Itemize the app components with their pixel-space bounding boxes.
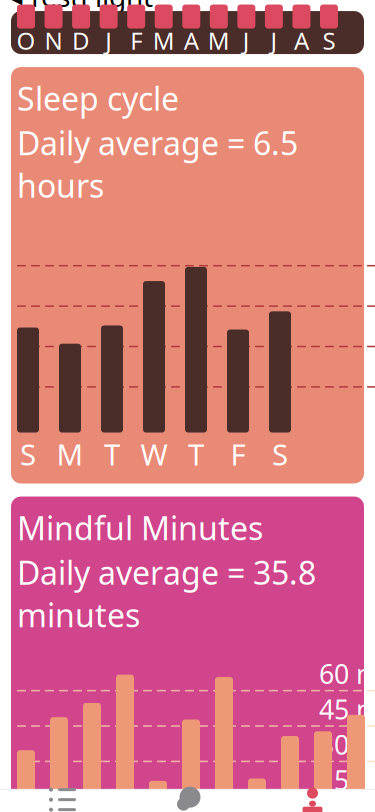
staticText: Daily average = 6.5 hours: [17, 122, 298, 207]
staticText: S: [20, 434, 36, 473]
staticText: M: [153, 25, 175, 56]
staticText: S: [272, 434, 288, 473]
staticText: F: [230, 434, 245, 473]
staticText: ◀: [7, 0, 22, 7]
staticText: Daily average = 35.8 minutes: [17, 551, 316, 636]
staticText: TestFlight: [27, 0, 153, 15]
staticText: Mindful Minutes: [17, 506, 263, 549]
staticText: S: [322, 25, 335, 56]
staticText: J: [270, 25, 277, 56]
staticText: 15 min: [319, 762, 375, 798]
staticText: A: [294, 25, 309, 56]
staticText: J: [105, 25, 112, 56]
staticText: Sleep cycle: [17, 77, 179, 120]
staticText: 30 min: [319, 727, 375, 762]
staticText: 45 min: [319, 691, 375, 727]
button[interactable]: Overview: [250, 780, 375, 812]
staticText: W: [140, 434, 167, 473]
staticText: M: [208, 25, 230, 56]
button[interactable]: Chat: [125, 780, 250, 812]
staticText: N: [44, 25, 62, 56]
staticText: T: [104, 434, 120, 473]
staticText: M: [56, 434, 83, 473]
staticText: D: [72, 25, 90, 56]
staticText: F: [130, 25, 142, 56]
staticText: J: [243, 25, 250, 56]
staticText: O: [16, 25, 35, 56]
staticText: A: [184, 25, 199, 56]
staticText: 60 min: [319, 656, 375, 691]
button[interactable]: ◀: [0, 0, 375, 8]
staticText: T: [188, 434, 204, 473]
button[interactable]: My List: [0, 780, 125, 812]
